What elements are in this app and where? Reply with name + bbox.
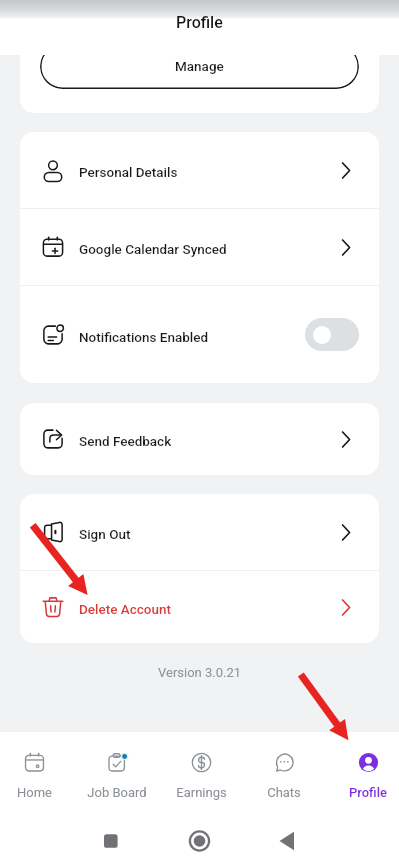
staticText: Google Calendar Synced [79,241,227,257]
staticText: Notifications Enabled [79,329,209,345]
staticText: Version 3.0.21 [158,665,242,680]
staticText: Manage [175,58,224,74]
button[interactable]: Notifications Enabled [20,286,379,383]
button[interactable]: Profile [326,732,399,810]
staticText: Chats [267,785,301,800]
staticText: Profile [176,13,223,32]
staticText: Job Board [87,785,147,800]
button[interactable]: Notifications toggle [305,318,359,351]
button[interactable]: Sign Out [20,494,379,570]
button[interactable]: Chats [242,732,326,810]
staticText: Home [17,785,52,800]
button[interactable]: Personal Details [20,132,379,208]
staticText: Profile [349,785,387,800]
button[interactable]: Home [0,732,76,810]
staticText: Delete Account [79,601,172,617]
staticText: Earnings [176,785,227,800]
button[interactable]: Send Feedback [20,403,379,475]
button[interactable]: Earnings [159,732,243,810]
button[interactable]: Google Calendar Synced [20,209,379,285]
staticText: Send Feedback [79,433,172,449]
button[interactable]: Manage [40,55,359,89]
staticText: Sign Out [79,526,131,542]
staticText: Personal Details [79,164,178,180]
button[interactable]: Delete Account [20,571,379,643]
button[interactable]: Job Board [75,732,159,810]
